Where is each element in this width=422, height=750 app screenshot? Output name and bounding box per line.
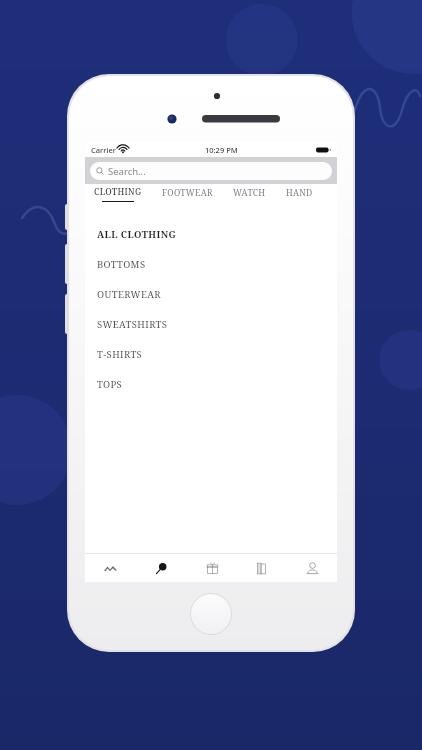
staticText: BOTTOMS [97,258,146,271]
button[interactable]: SWEATSHIRTS [93,309,337,339]
button[interactable]: WATCH [232,185,267,204]
staticText: WATCH [233,187,266,199]
button[interactable]: Lookbook [237,554,287,582]
button[interactable]: OUTERWEAR [93,279,337,309]
button[interactable]: Account [287,554,337,582]
staticText: TOPS [97,378,123,391]
button[interactable]: BOTTOMS [93,249,337,279]
staticText: CLOTHING [94,186,142,198]
staticText: Search... [108,165,146,178]
staticText: 10:29 PM [205,145,238,155]
button[interactable]: CLOTHING [93,184,143,204]
staticText: FOOTWEAR [162,187,213,199]
button[interactable]: Search... [90,162,332,180]
staticText: Carrier [91,145,116,155]
staticText: OUTERWEAR [97,288,161,301]
staticText: SWEATSHIRTS [97,318,168,331]
button[interactable]: ALL CLOTHING [93,219,337,249]
button[interactable]: T-SHIRTS [93,339,337,369]
button[interactable]: Home button [190,593,232,635]
staticText: T-SHIRTS [97,348,143,361]
button[interactable]: Search [136,554,187,582]
button[interactable]: FOOTWEAR [161,185,214,204]
button[interactable]: Home [85,554,136,582]
button[interactable]: HAND [285,185,314,204]
button[interactable]: Gifts [187,554,237,582]
staticText: HAND [286,187,313,199]
button[interactable]: TOPS [93,369,337,399]
staticText: ALL CLOTHING [97,228,177,241]
